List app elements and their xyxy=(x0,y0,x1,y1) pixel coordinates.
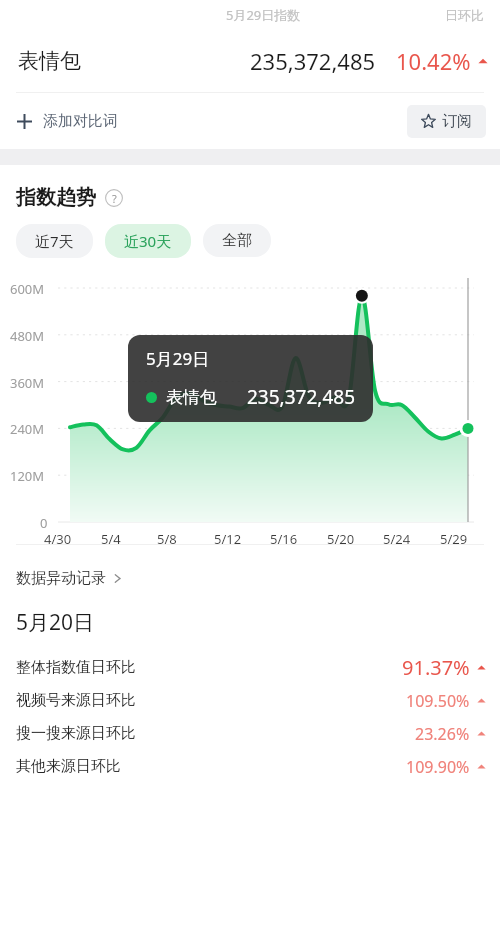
staticText: 91.37% xyxy=(402,654,470,681)
staticText: 23.26% xyxy=(415,723,470,745)
staticText: 近30天 xyxy=(124,231,172,251)
staticText: 600M xyxy=(10,280,45,298)
staticText: 360M xyxy=(10,374,45,392)
staticText: 数据异动记录 xyxy=(16,569,106,588)
button[interactable]: 搜一搜来源日环比 xyxy=(0,717,500,750)
staticText: 480M xyxy=(10,327,45,345)
staticText: ? xyxy=(112,191,117,206)
staticText: 5月29日 xyxy=(146,347,210,370)
staticText: 5/12 xyxy=(214,530,242,548)
button[interactable]: 全部 xyxy=(203,224,271,257)
button[interactable]: 表情包 xyxy=(0,30,500,92)
staticText: 0 xyxy=(40,514,48,532)
staticText: 近7天 xyxy=(35,231,74,251)
staticText: 10.42% xyxy=(396,46,471,76)
staticText: 视频号来源日环比 xyxy=(16,691,136,710)
staticText: 235,372,485 xyxy=(247,384,355,410)
button[interactable]: 近7天 xyxy=(16,224,93,258)
staticText: 订阅 xyxy=(442,112,472,131)
button[interactable]: 视频号来源日环比 xyxy=(0,684,500,717)
staticText: 4/30 xyxy=(44,530,72,548)
staticText: 5月29日指数 xyxy=(226,6,301,24)
button[interactable]: 数据异动记录 xyxy=(0,567,139,590)
staticText: 5/24 xyxy=(383,530,411,548)
button[interactable]: 订阅 xyxy=(407,105,486,138)
staticText: 109.90% xyxy=(406,756,470,778)
staticText: 235,372,485 xyxy=(250,46,376,76)
staticText: 5/4 xyxy=(101,530,121,548)
staticText: 全部 xyxy=(222,231,252,250)
staticText: 日环比 xyxy=(445,7,484,23)
staticText: 指数趋势 xyxy=(16,185,96,210)
staticText: 添加对比词 xyxy=(43,112,118,131)
staticText: 表情包 xyxy=(166,387,217,408)
staticText: 5/29 xyxy=(440,530,468,548)
staticText: 表情包 xyxy=(18,48,81,74)
button[interactable]: 近30天 xyxy=(105,224,191,258)
staticText: 240M xyxy=(10,420,45,438)
staticText: 5/8 xyxy=(157,530,177,548)
staticText: 109.50% xyxy=(406,690,470,712)
staticText: 120M xyxy=(10,467,45,485)
staticText: 搜一搜来源日环比 xyxy=(16,724,136,743)
staticText: 整体指数值日环比 xyxy=(16,658,136,677)
button[interactable]: 其他来源日环比 xyxy=(0,750,500,783)
button[interactable]: 添加对比词 xyxy=(0,104,132,139)
staticText: 5/20 xyxy=(327,530,355,548)
staticText: 5月20日 xyxy=(16,608,95,637)
button[interactable]: Help xyxy=(105,189,123,207)
staticText: 5/16 xyxy=(270,530,298,548)
staticText: 其他来源日环比 xyxy=(16,757,121,776)
button[interactable]: 整体指数值日环比 xyxy=(0,651,500,684)
